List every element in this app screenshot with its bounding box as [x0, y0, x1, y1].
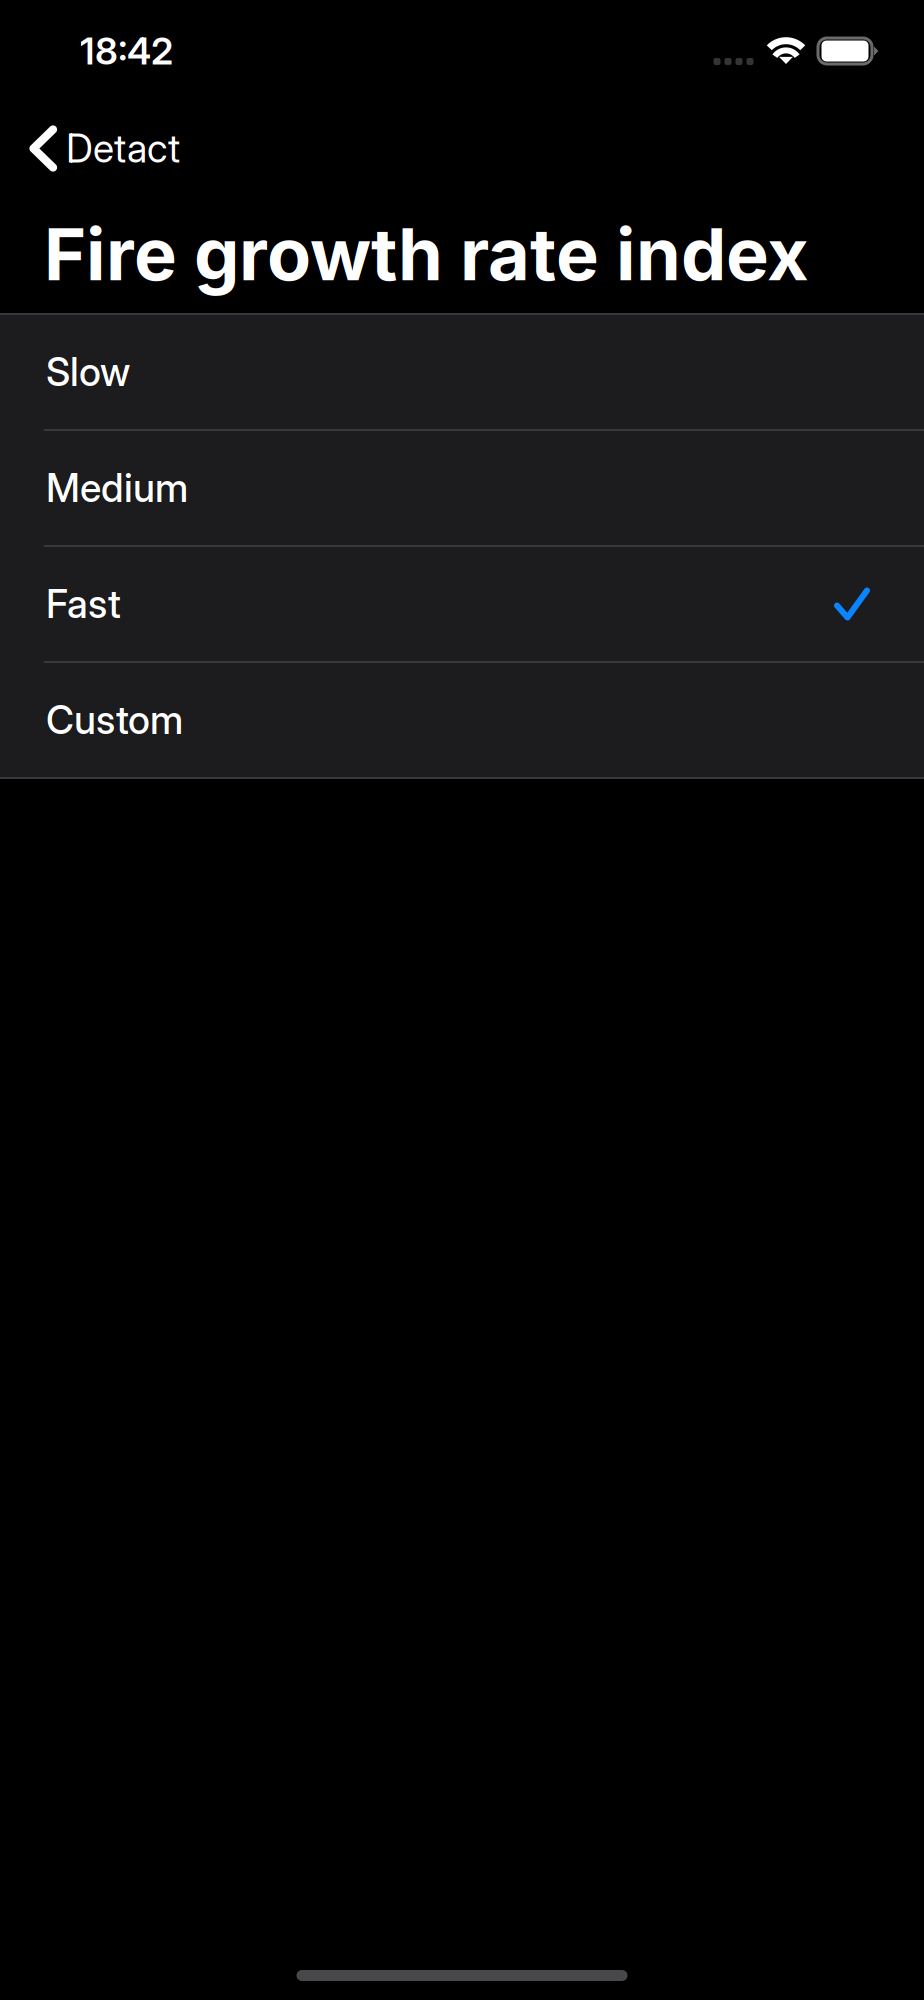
button[interactable]: Slow: [0, 315, 924, 429]
staticText: Fast: [46, 581, 121, 627]
staticText: Medium: [46, 465, 188, 511]
button[interactable]: Fast: [0, 547, 924, 661]
staticText: 18:42: [80, 28, 173, 74]
staticText: Custom: [46, 697, 183, 743]
staticText: Fire growth rate index: [44, 210, 809, 297]
button[interactable]: Medium: [0, 431, 924, 545]
button[interactable]: Custom: [0, 663, 924, 777]
staticText: Detact: [66, 125, 180, 172]
staticText: Slow: [46, 349, 130, 395]
button[interactable]: Back to Detact: [0, 102, 520, 195]
